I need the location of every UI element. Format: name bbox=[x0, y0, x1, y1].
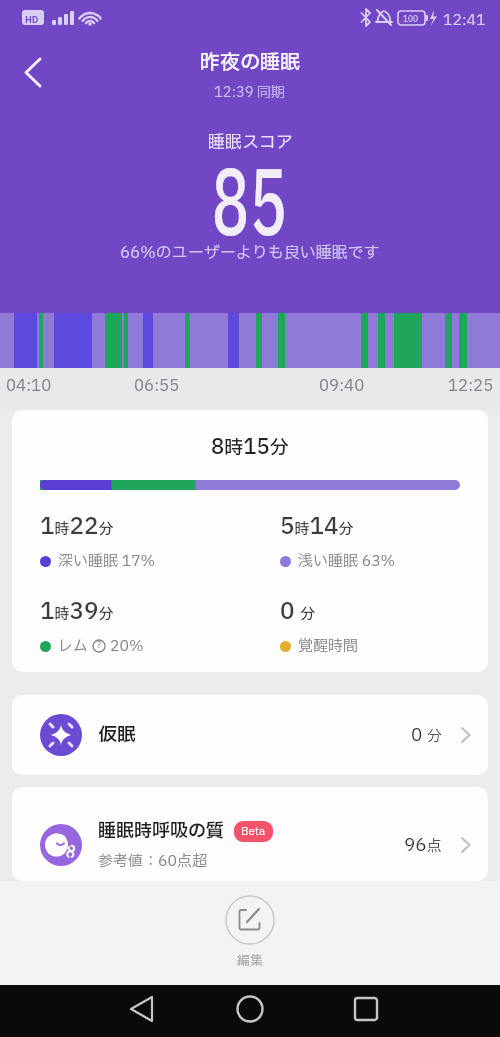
staticText: 0 分 bbox=[280, 595, 316, 629]
staticText: 浅い睡眠 63% bbox=[298, 550, 396, 572]
staticText: 睡眠スコア bbox=[208, 130, 293, 155]
staticText: 睡眠時呼吸の質 bbox=[98, 818, 224, 845]
staticText: 昨夜の睡眠 bbox=[200, 48, 300, 78]
staticText: ? bbox=[97, 640, 101, 652]
staticText: 09:40 bbox=[319, 374, 365, 398]
staticText: 8時15分 bbox=[211, 432, 289, 463]
staticText: Beta bbox=[241, 823, 266, 840]
staticText: 1時22分 bbox=[40, 510, 114, 544]
staticText: HD bbox=[25, 13, 39, 26]
staticText: 20% bbox=[110, 635, 144, 657]
staticText: 仮眠 bbox=[98, 721, 137, 749]
staticText: 04:10 bbox=[6, 374, 52, 398]
staticText: 66%のユーザーよりも良い睡眠です bbox=[120, 241, 380, 265]
staticText: レム bbox=[58, 635, 88, 657]
staticText: 0 分 bbox=[411, 722, 442, 749]
staticText: 12:39 同期 bbox=[214, 82, 286, 103]
staticText: 85 bbox=[212, 140, 288, 275]
staticText: 編集 bbox=[237, 951, 264, 970]
staticText: 5時14分 bbox=[280, 510, 354, 544]
staticText: 1時39分 bbox=[40, 595, 114, 629]
staticText: 96点 bbox=[404, 832, 442, 859]
staticText: 深い睡眠 17% bbox=[58, 550, 156, 572]
staticText: 06:55 bbox=[134, 374, 180, 398]
staticText: 100 bbox=[403, 14, 419, 26]
staticText: 12:25 bbox=[448, 374, 494, 398]
staticText: 覚醒時間 bbox=[298, 635, 359, 657]
staticText: 12:41 bbox=[443, 9, 486, 31]
staticText: 参考値：60点超 bbox=[98, 850, 207, 872]
